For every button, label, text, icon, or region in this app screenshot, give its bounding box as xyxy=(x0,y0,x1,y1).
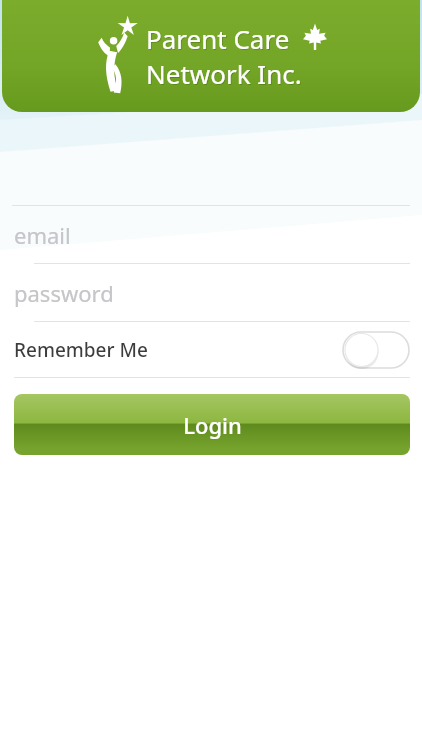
button[interactable]: Parent Care Network Inc. xyxy=(2,0,420,112)
button[interactable]: Remember Me toggle, off xyxy=(343,332,409,368)
button[interactable]: Login xyxy=(14,394,410,455)
button[interactable]: Remember Me xyxy=(0,322,422,377)
staticText: password xyxy=(14,278,114,308)
staticText: Network Inc. xyxy=(147,57,303,92)
staticText: Login xyxy=(183,410,242,440)
staticText: Parent Care xyxy=(147,22,291,57)
staticText: email xyxy=(14,220,71,250)
staticText: Remember Me xyxy=(14,337,148,363)
staticText: Parent Care xyxy=(146,21,290,56)
button[interactable]: email xyxy=(0,206,422,263)
staticText: Network Inc. xyxy=(146,56,302,91)
button[interactable]: password xyxy=(0,264,422,321)
